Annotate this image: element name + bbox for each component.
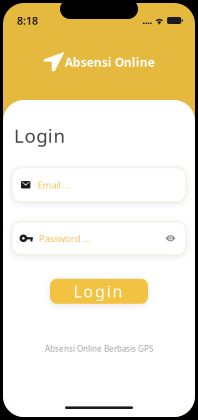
staticText: Login	[14, 123, 65, 148]
staticText: Login	[73, 281, 123, 302]
staticText: Absensi Online	[65, 54, 155, 70]
staticText: Absensi Online Berbasis GPS	[45, 343, 153, 354]
staticText: 8:18	[17, 13, 38, 28]
staticText: Password ...	[39, 232, 92, 244]
staticText: Email ...	[37, 179, 71, 191]
button[interactable]: Login	[50, 279, 148, 304]
